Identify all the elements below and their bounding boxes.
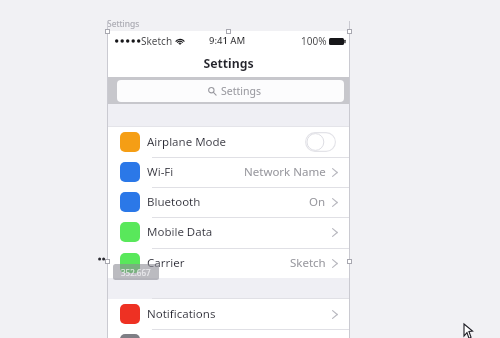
button[interactable]: Notifications (108, 299, 349, 329)
button[interactable]: Airplane Mode (108, 127, 349, 157)
staticText: Settings (203, 55, 254, 72)
button[interactable]: Mobile Data (108, 217, 349, 247)
staticText: 100% (301, 34, 327, 48)
staticText: Sketch (290, 255, 326, 271)
staticText: 352.667 (121, 267, 151, 278)
staticText: Notifications (147, 306, 216, 322)
staticText: Sketch (141, 34, 173, 48)
staticText: Airplane Mode (147, 134, 227, 150)
other: Open Bluetooth (332, 198, 338, 207)
staticText: 9:41 AM (209, 34, 246, 47)
other: Open Notifications (332, 310, 338, 319)
staticText: Settings (107, 18, 140, 30)
staticText: Mobile Data (147, 224, 213, 240)
button[interactable]: Settings (117, 80, 344, 102)
staticText: Carrier (147, 255, 185, 271)
other: Open Carrier (332, 259, 338, 268)
button[interactable]: Sounds (108, 329, 349, 338)
staticText: Wi-Fi (147, 164, 174, 180)
button[interactable]: Carrier (108, 248, 349, 278)
other: Open Mobile Data (332, 228, 338, 237)
staticText: Bluetooth (147, 194, 201, 210)
other: Open Wi-Fi (332, 168, 338, 177)
button[interactable]: Airplane Mode toggle (305, 132, 336, 152)
staticText: Settings (221, 84, 261, 98)
button[interactable]: Bluetooth (108, 187, 349, 217)
staticText: On (309, 194, 326, 210)
button[interactable]: Wi-Fi (108, 157, 349, 187)
staticText: Network Name (244, 164, 326, 180)
